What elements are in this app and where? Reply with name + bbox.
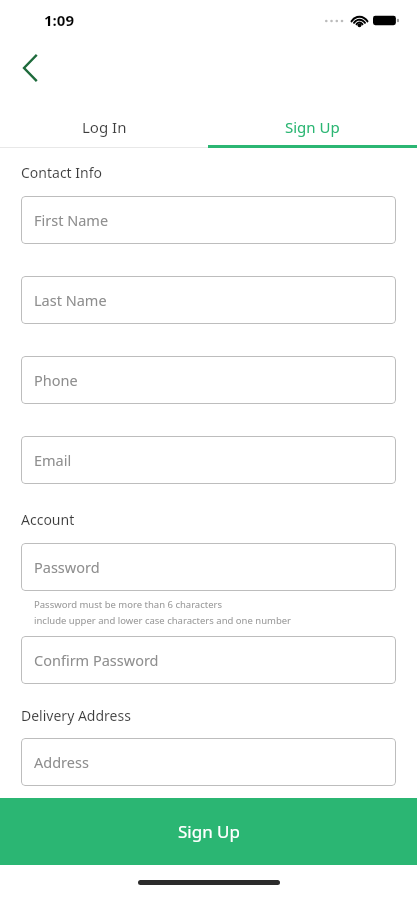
button[interactable]: Phone	[21, 356, 396, 404]
staticText: Phone	[34, 370, 78, 390]
staticText: Password	[34, 557, 100, 577]
staticText: Address	[34, 752, 89, 772]
staticText: 1:09	[44, 10, 74, 30]
staticText: First Name	[34, 210, 109, 230]
staticText: Last Name	[34, 290, 107, 310]
button[interactable]: Address	[21, 738, 396, 786]
staticText: Password must be more than 6 characters	[34, 598, 223, 611]
button[interactable]: Password	[21, 543, 396, 591]
staticText: include upper and lower case characters …	[34, 614, 292, 627]
staticText: Sign Up	[285, 117, 340, 137]
staticText: Contact Info	[21, 163, 102, 182]
button[interactable]: Sign Up	[0, 798, 417, 865]
staticText: Confirm Password	[34, 650, 159, 670]
button[interactable]: Email	[21, 436, 396, 484]
staticText: Account	[21, 510, 75, 529]
button[interactable]: First Name	[21, 196, 396, 244]
staticText: Log In	[82, 117, 127, 137]
button[interactable]: Confirm Password	[21, 636, 396, 684]
staticText: Email	[34, 450, 72, 470]
button[interactable]: Log In	[0, 105, 208, 148]
button[interactable]: Last Name	[21, 276, 396, 324]
button[interactable]: Back	[4, 46, 56, 90]
staticText: Delivery Address	[21, 706, 131, 725]
button[interactable]: Sign Up	[208, 105, 417, 148]
staticText: Sign Up	[178, 820, 240, 843]
